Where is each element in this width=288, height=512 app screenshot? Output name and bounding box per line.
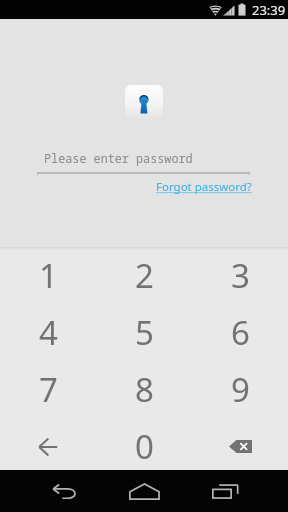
button[interactable]: Home [120,473,169,509]
button[interactable]: 8 [96,361,192,418]
staticText: 3 [231,253,250,298]
staticText: 6 [231,310,250,355]
button[interactable]: 9 [192,361,288,418]
button[interactable]: 1 [0,247,96,304]
staticText: 4 [39,310,58,355]
button[interactable]: 0 [96,418,192,475]
button[interactable]: 7 [0,361,96,418]
staticText: 2 [135,253,154,298]
button[interactable]: Forgot password? [156,179,252,195]
staticText: Forgot password? [156,179,252,195]
staticText: Please enter password [44,150,193,166]
button[interactable]: Recents [202,473,250,509]
staticText: 23:39 [252,1,286,19]
button[interactable]: 2 [96,247,192,304]
staticText: 9 [231,367,250,412]
staticText: 5 [135,310,154,355]
button[interactable]: 6 [192,304,288,361]
staticText: 7 [39,367,58,412]
staticText: 8 [135,367,154,412]
button[interactable]: 5 [96,304,192,361]
button[interactable]: Delete [192,418,288,475]
staticText: 1 [39,253,58,298]
button[interactable]: Back [40,473,88,509]
button[interactable]: 4 [0,304,96,361]
button[interactable]: Back [0,418,96,475]
staticText: 0 [135,424,154,469]
button[interactable]: 3 [192,247,288,304]
